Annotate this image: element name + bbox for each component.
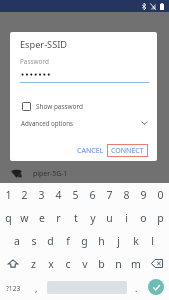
staticText: Advanced options	[21, 119, 73, 127]
staticText: .	[135, 282, 138, 294]
button[interactable]: piper-5G-1	[0, 164, 169, 182]
button[interactable]: e	[33, 206, 50, 229]
button[interactable]: 0	[152, 183, 169, 206]
button[interactable]: c	[59, 252, 76, 275]
staticText: piper-5G-1	[33, 169, 68, 178]
staticText: z	[31, 257, 36, 271]
staticText: c	[65, 257, 71, 271]
button[interactable]: r	[50, 206, 67, 229]
staticText: 0	[157, 188, 164, 202]
staticText: o	[140, 211, 147, 225]
staticText: d	[47, 234, 54, 248]
button[interactable]: Shift	[0, 252, 25, 275]
staticText: b	[98, 257, 105, 271]
staticText: p	[157, 211, 164, 225]
button[interactable]: ?123	[0, 275, 26, 298]
button[interactable]: 4	[50, 183, 67, 206]
staticText: 9	[140, 188, 147, 202]
button[interactable]: Backspace	[144, 252, 169, 275]
button[interactable]: 6	[84, 183, 101, 206]
staticText: a	[14, 234, 20, 248]
button[interactable]: m	[127, 252, 144, 275]
staticText: 1	[5, 188, 12, 202]
button[interactable]: h	[93, 229, 110, 252]
staticText: e	[39, 211, 45, 225]
button[interactable]: CONNECT	[107, 144, 148, 157]
button[interactable]: q	[0, 206, 16, 229]
button[interactable]: i	[118, 206, 135, 229]
button[interactable]: Enter	[148, 279, 164, 295]
button[interactable]: x	[42, 252, 59, 275]
staticText: 2	[21, 188, 28, 202]
staticText: t	[74, 211, 78, 225]
button[interactable]: 9	[135, 183, 152, 206]
staticText: x	[48, 257, 54, 271]
button[interactable]: d	[42, 229, 59, 252]
button[interactable]: 2	[16, 183, 33, 206]
button[interactable]: p	[152, 206, 169, 229]
button[interactable]: Advanced options	[21, 117, 148, 129]
staticText: 6	[89, 188, 96, 202]
button[interactable]: 8	[118, 183, 135, 206]
staticText: 4	[55, 188, 62, 202]
button[interactable]: y	[84, 206, 101, 229]
button[interactable]: o	[135, 206, 152, 229]
staticText: f	[66, 234, 70, 248]
staticText: k	[133, 234, 139, 248]
staticText: m	[131, 257, 141, 271]
button[interactable]: j	[110, 229, 127, 252]
button[interactable]: a	[8, 229, 25, 252]
staticText: Esper-SSID	[20, 38, 68, 51]
staticText: 3	[38, 188, 45, 202]
staticText: Show password	[36, 102, 83, 111]
button[interactable]: ,	[26, 275, 46, 298]
staticText: r	[56, 211, 61, 225]
button[interactable]: Show password	[20, 100, 83, 113]
button[interactable]: s	[25, 229, 42, 252]
button[interactable]: b	[93, 252, 110, 275]
button[interactable]: l	[144, 229, 161, 252]
button[interactable]: f	[59, 229, 76, 252]
button[interactable]: n	[110, 252, 127, 275]
staticText: 8	[123, 188, 130, 202]
staticText: w	[20, 211, 29, 225]
staticText: Password	[20, 57, 49, 66]
staticText: ,	[35, 282, 38, 294]
button[interactable]: k	[127, 229, 144, 252]
staticText: 7	[106, 188, 113, 202]
staticText: q	[5, 211, 12, 225]
staticText: i	[125, 211, 128, 225]
staticText: CONNECT	[111, 146, 144, 156]
button[interactable]: CANCEL	[74, 144, 107, 157]
button[interactable]: v	[76, 252, 93, 275]
staticText: y	[90, 211, 96, 225]
staticText: h	[98, 234, 105, 248]
staticText: CANCEL	[77, 146, 104, 156]
button[interactable]: u	[101, 206, 118, 229]
staticText: j	[117, 234, 120, 248]
staticText: l	[151, 234, 154, 248]
button[interactable]: 3	[33, 183, 50, 206]
button[interactable]: 1	[0, 183, 16, 206]
button[interactable]: .	[127, 275, 145, 298]
button[interactable]: w	[16, 206, 33, 229]
staticText: v	[82, 257, 88, 271]
staticText: s	[31, 234, 37, 248]
staticText: 5	[72, 188, 79, 202]
staticText: u	[106, 211, 113, 225]
button[interactable]: z	[25, 252, 42, 275]
staticText: n	[115, 257, 122, 271]
staticText: ?123	[6, 284, 21, 293]
button[interactable]: 5	[67, 183, 84, 206]
button[interactable]: g	[76, 229, 93, 252]
button[interactable]: 7	[101, 183, 118, 206]
button[interactable]: t	[67, 206, 84, 229]
staticText: g	[81, 234, 88, 248]
